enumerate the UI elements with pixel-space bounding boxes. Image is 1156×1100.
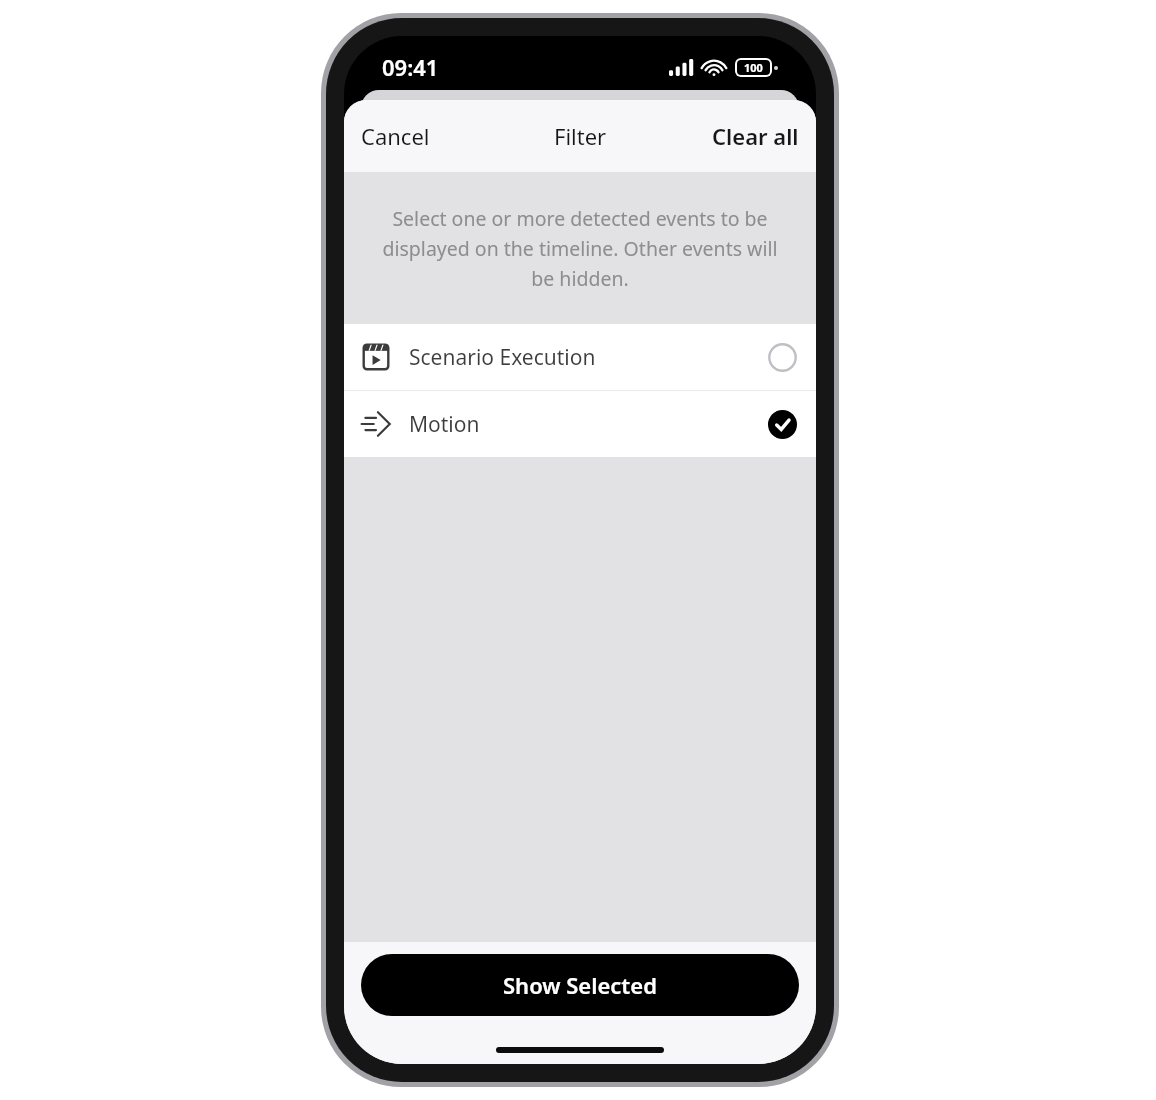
other: Scenario Execution bbox=[361, 342, 391, 372]
other: Not selected bbox=[768, 343, 797, 372]
button[interactable]: Scenario Execution bbox=[344, 324, 816, 390]
other: Selected bbox=[768, 410, 797, 439]
staticText: 100 bbox=[744, 60, 763, 75]
staticText: 09:41 bbox=[382, 52, 439, 82]
staticText: Select one or more detected events to be… bbox=[374, 205, 786, 291]
other: Motion bbox=[360, 408, 392, 440]
staticText: Show Selected bbox=[503, 970, 657, 1000]
staticText: Filter bbox=[554, 121, 607, 151]
staticText: Scenario Execution bbox=[409, 343, 596, 372]
button[interactable]: Clear all bbox=[695, 109, 816, 163]
button[interactable]: Show Selected bbox=[361, 954, 799, 1016]
staticText: Cancel bbox=[361, 121, 430, 151]
button[interactable]: Cancel bbox=[344, 109, 447, 163]
staticText: Clear all bbox=[712, 121, 799, 151]
staticText: Motion bbox=[409, 410, 480, 439]
button[interactable]: Motion bbox=[344, 391, 816, 457]
